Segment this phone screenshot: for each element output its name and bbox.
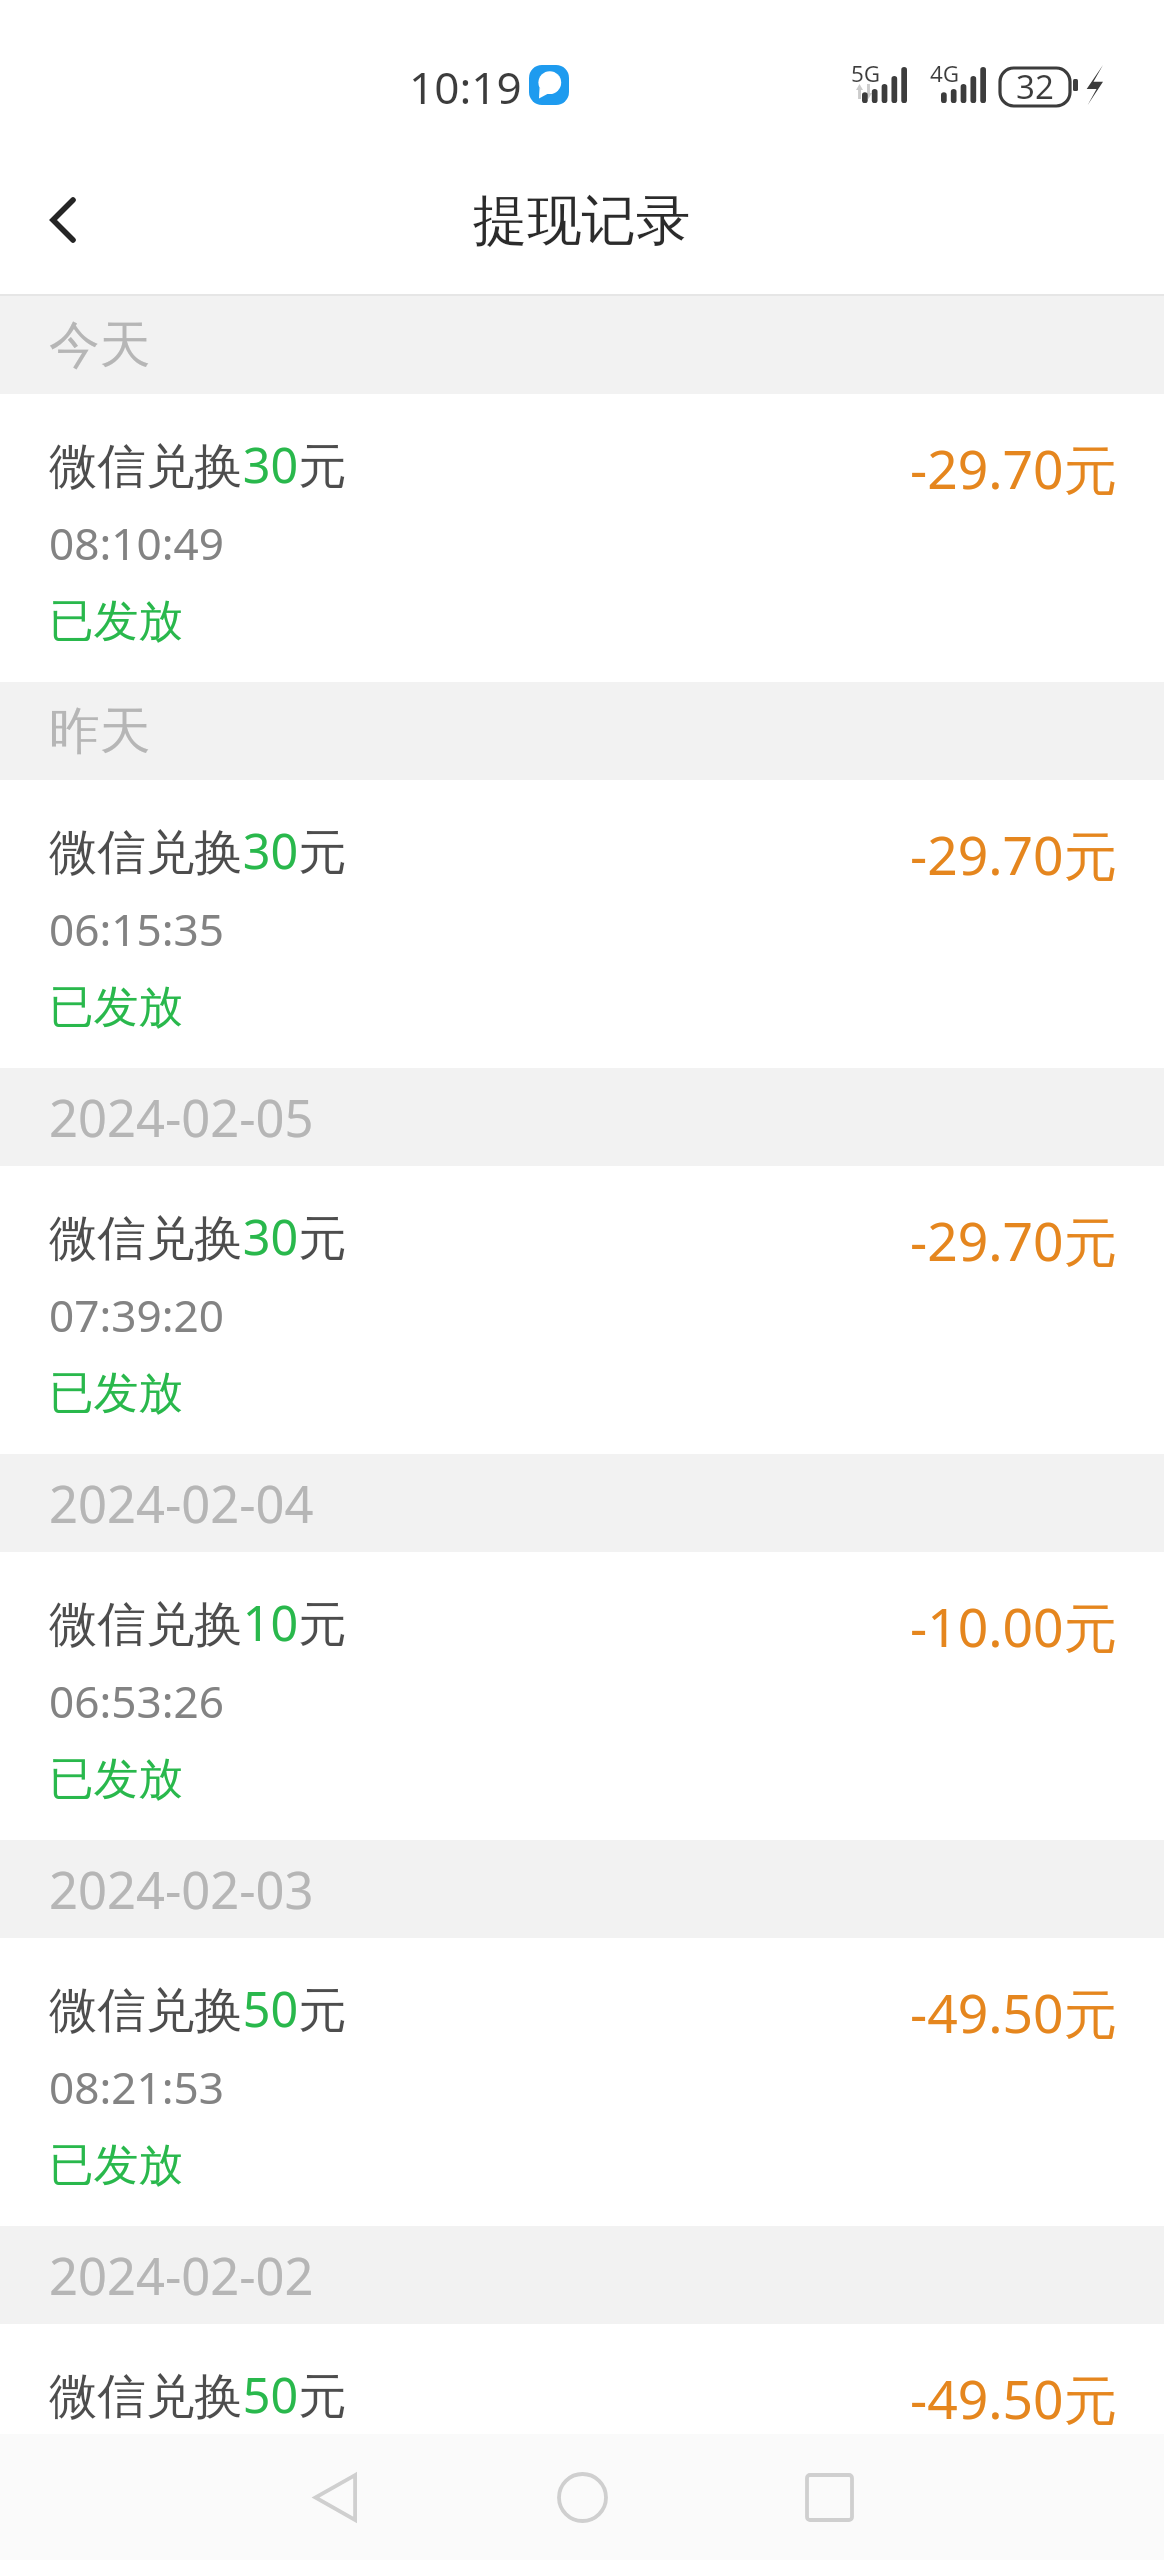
staticText: -10.00元 bbox=[910, 1590, 1118, 1663]
staticText: 4G bbox=[930, 58, 960, 89]
staticText: 32 bbox=[1016, 64, 1054, 109]
staticText: 2024-02-02 bbox=[49, 2241, 314, 2310]
button[interactable]: 微信兑换30元 bbox=[0, 1166, 1164, 1454]
staticText: 微信兑换50元 bbox=[49, 2361, 347, 2427]
button[interactable]: Back bbox=[0, 148, 135, 292]
staticText: 06:53:26 bbox=[49, 1671, 224, 1731]
staticText: 已发放 bbox=[49, 979, 184, 1035]
staticText: 2024-02-04 bbox=[49, 1469, 314, 1538]
staticText: -49.50元 bbox=[910, 1976, 1118, 2049]
staticText: 5G bbox=[851, 58, 881, 89]
button[interactable]: 微信兑换50元 bbox=[0, 1938, 1164, 2226]
button[interactable]: 微信兑换30元 bbox=[0, 394, 1164, 682]
staticText: 今天 bbox=[49, 313, 151, 377]
staticText: 06:15:35 bbox=[49, 899, 224, 959]
button[interactable]: Back bbox=[262, 2434, 406, 2560]
staticText: 微信兑换10元 bbox=[49, 1589, 347, 1655]
staticText: -49.50元 bbox=[910, 2362, 1118, 2435]
staticText: -29.70元 bbox=[910, 818, 1118, 891]
button[interactable]: 微信兑换30元 bbox=[0, 780, 1164, 1068]
staticText: 08:21:53 bbox=[49, 2057, 224, 2117]
button[interactable]: Home bbox=[510, 2434, 654, 2560]
staticText: -29.70元 bbox=[910, 1204, 1118, 1277]
staticText: 提现记录 bbox=[473, 187, 691, 255]
staticText: 已发放 bbox=[49, 1751, 184, 1807]
staticText: 2024-02-05 bbox=[49, 1083, 314, 1152]
staticText: 微信兑换50元 bbox=[49, 1975, 347, 2041]
button[interactable]: 微信兑换10元 bbox=[0, 1552, 1164, 1840]
staticText: 已发放 bbox=[49, 2137, 184, 2193]
staticText: 昨天 bbox=[49, 699, 151, 763]
staticText: 已发放 bbox=[49, 593, 184, 649]
staticText: 微信兑换30元 bbox=[49, 431, 347, 497]
staticText: 2024-02-03 bbox=[49, 1855, 314, 1924]
staticText: 08:10:49 bbox=[49, 513, 224, 573]
staticText: -29.70元 bbox=[910, 432, 1118, 505]
staticText: 微信兑换30元 bbox=[49, 817, 347, 883]
button[interactable]: 微信兑换50元 bbox=[0, 2324, 1164, 2560]
staticText: 已发放 bbox=[49, 1365, 184, 1421]
staticText: 10:19 bbox=[409, 57, 522, 117]
staticText: 07:39:20 bbox=[49, 1285, 224, 1345]
staticText: 微信兑换30元 bbox=[49, 1203, 347, 1269]
button[interactable]: Recents bbox=[757, 2434, 901, 2560]
